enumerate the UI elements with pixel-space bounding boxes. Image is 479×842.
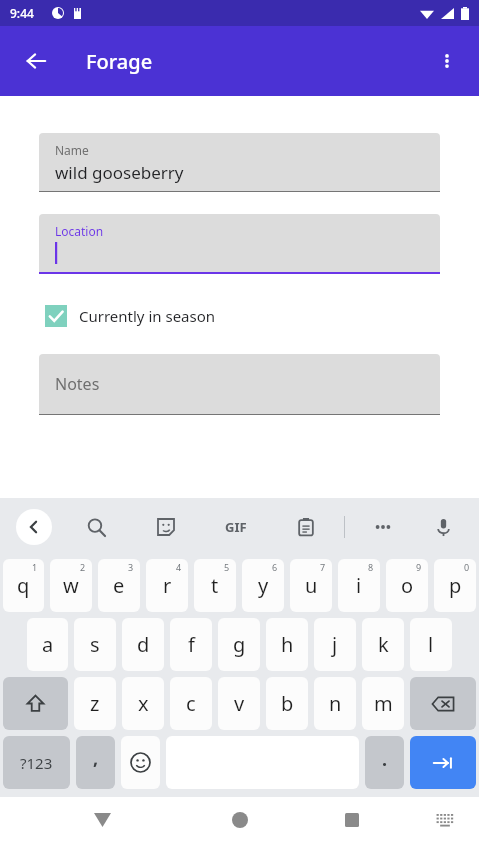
staticText: Currently in season <box>79 306 216 326</box>
staticText: 3 <box>128 561 134 573</box>
staticText: e <box>113 572 125 599</box>
staticText: 0 <box>464 561 470 573</box>
staticText: GIF <box>225 518 247 536</box>
button[interactable]: More <box>359 503 407 551</box>
staticText: i <box>356 572 362 599</box>
staticText: 7 <box>320 561 326 573</box>
staticText: y <box>258 572 269 599</box>
button[interactable]: i <box>338 559 380 612</box>
staticText: Forage <box>86 48 153 75</box>
staticText: , <box>93 746 99 771</box>
button[interactable]: GIF <box>212 503 260 551</box>
staticText: Location <box>55 223 104 239</box>
button[interactable]: n <box>314 677 356 730</box>
staticText: b <box>281 690 294 717</box>
button[interactable]: p <box>434 559 476 612</box>
staticText: Name <box>55 142 89 158</box>
staticText: 8 <box>368 561 374 573</box>
staticText: t <box>211 572 219 599</box>
button[interactable]: z <box>74 677 116 730</box>
staticText: 6 <box>272 561 278 573</box>
staticText: 9 <box>416 561 422 573</box>
staticText: v <box>234 690 245 717</box>
button[interactable]: . <box>365 736 404 789</box>
staticText: 5 <box>224 561 230 573</box>
button[interactable]: Name <box>39 133 440 192</box>
button[interactable]: l <box>410 618 452 671</box>
button[interactable]: v <box>218 677 260 730</box>
button[interactable]: ?123 <box>3 736 70 789</box>
button[interactable]: g <box>218 618 260 671</box>
staticText: w <box>63 572 79 599</box>
staticText: r <box>163 572 172 599</box>
staticText: h <box>281 631 294 658</box>
staticText: 9:44 <box>10 5 34 21</box>
button[interactable]: Recents <box>330 798 374 842</box>
button[interactable]: Backspace <box>410 677 476 730</box>
button[interactable]: c <box>170 677 212 730</box>
button[interactable]: t <box>194 559 236 612</box>
staticText: c <box>186 690 196 717</box>
staticText: wild gooseberry <box>55 161 184 184</box>
staticText: l <box>428 631 434 658</box>
staticText: s <box>90 631 100 658</box>
staticText: a <box>42 631 54 658</box>
button[interactable]: Notes <box>39 354 440 415</box>
button[interactable]: j <box>314 618 356 671</box>
staticText: m <box>374 690 393 717</box>
button[interactable]: x <box>122 677 164 730</box>
button[interactable]: Currently in season <box>45 305 216 327</box>
button[interactable]: k <box>362 618 404 671</box>
staticText: 1 <box>32 561 38 573</box>
button[interactable]: Back <box>80 798 124 842</box>
button[interactable]: Home <box>218 798 262 842</box>
button[interactable]: o <box>386 559 428 612</box>
button[interactable]: More options <box>425 39 469 83</box>
staticText: . <box>382 747 388 772</box>
button[interactable]: Location <box>39 214 440 274</box>
button[interactable]: Stickers <box>142 503 190 551</box>
staticText: o <box>401 572 414 599</box>
staticText: j <box>332 631 338 658</box>
button[interactable]: Switch keyboard <box>425 800 465 840</box>
button[interactable]: a <box>27 618 68 671</box>
staticText: n <box>329 690 342 717</box>
button[interactable]: w <box>50 559 92 612</box>
button[interactable]: Emoji <box>121 736 160 789</box>
button[interactable]: y <box>242 559 284 612</box>
staticText: ?123 <box>20 753 53 773</box>
button[interactable]: r <box>146 559 188 612</box>
button[interactable]: e <box>98 559 140 612</box>
staticText: g <box>233 631 246 658</box>
button[interactable]: m <box>362 677 404 730</box>
button[interactable]: h <box>266 618 308 671</box>
staticText: p <box>449 572 462 599</box>
button[interactable]: u <box>290 559 332 612</box>
staticText: 4 <box>176 561 182 573</box>
staticText: f <box>188 631 195 658</box>
button[interactable]: q <box>3 559 44 612</box>
button[interactable]: Shift <box>3 677 68 730</box>
button[interactable]: s <box>74 618 116 671</box>
staticText: q <box>17 572 30 599</box>
button[interactable]: Back <box>14 39 58 83</box>
button[interactable]: Clipboard <box>282 503 330 551</box>
button[interactable]: d <box>122 618 164 671</box>
staticText: u <box>305 572 318 599</box>
staticText: d <box>137 631 150 658</box>
staticText: k <box>378 631 389 658</box>
button[interactable]: Next field <box>410 736 476 789</box>
button[interactable]: b <box>266 677 308 730</box>
staticText: 2 <box>80 561 86 573</box>
staticText: x <box>138 690 149 717</box>
button[interactable]: Search <box>72 503 120 551</box>
staticText: Notes <box>55 373 100 395</box>
button[interactable]: Voice input <box>421 505 465 549</box>
button[interactable]: , <box>76 736 115 789</box>
button[interactable]: Close toolbar <box>16 509 52 545</box>
staticText: z <box>90 690 100 717</box>
button[interactable]: f <box>170 618 212 671</box>
